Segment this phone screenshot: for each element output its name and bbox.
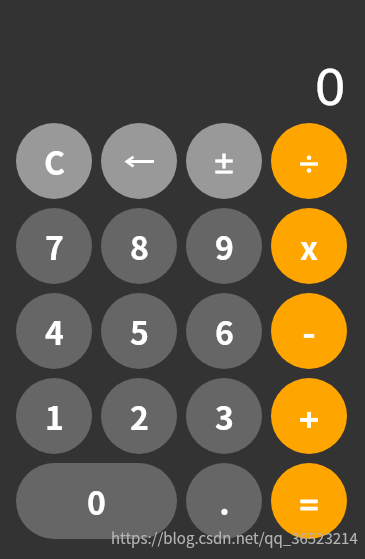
button[interactable]: 4: [16, 293, 92, 369]
button[interactable]: C: [16, 123, 92, 199]
button[interactable]: 7: [16, 208, 92, 284]
button[interactable]: Minus: [271, 293, 347, 369]
staticText: 8: [130, 223, 149, 269]
staticText: .: [219, 478, 230, 524]
staticText: 5: [130, 308, 149, 354]
button[interactable]: Toggle sign: [186, 123, 262, 199]
button[interactable]: 8: [101, 208, 177, 284]
button[interactable]: x: [271, 208, 347, 284]
button[interactable]: .: [186, 463, 262, 539]
staticText: C: [44, 138, 65, 184]
button[interactable]: 2: [101, 378, 177, 454]
button[interactable]: 3: [186, 378, 262, 454]
button[interactable]: 1: [16, 378, 92, 454]
button[interactable]: Plus: [271, 378, 347, 454]
staticText: x: [300, 223, 318, 269]
staticText: 3: [215, 393, 234, 439]
staticText: 4: [45, 308, 64, 354]
staticText: 1: [45, 393, 64, 439]
staticText: 6: [215, 308, 234, 354]
staticText: 7: [45, 223, 64, 269]
button[interactable]: Backspace: [101, 123, 177, 199]
staticText: 9: [215, 223, 234, 269]
button[interactable]: 5: [101, 293, 177, 369]
staticText: 0: [87, 478, 106, 524]
button[interactable]: Equals: [271, 463, 347, 539]
button[interactable]: 6: [186, 293, 262, 369]
staticText: https://blog.csdn.net/qq_36523214: [111, 527, 358, 549]
button[interactable]: 9: [186, 208, 262, 284]
button[interactable]: Divide: [271, 123, 347, 199]
staticText: 0: [314, 59, 346, 117]
button[interactable]: 0: [16, 463, 177, 539]
staticText: 2: [130, 393, 149, 439]
